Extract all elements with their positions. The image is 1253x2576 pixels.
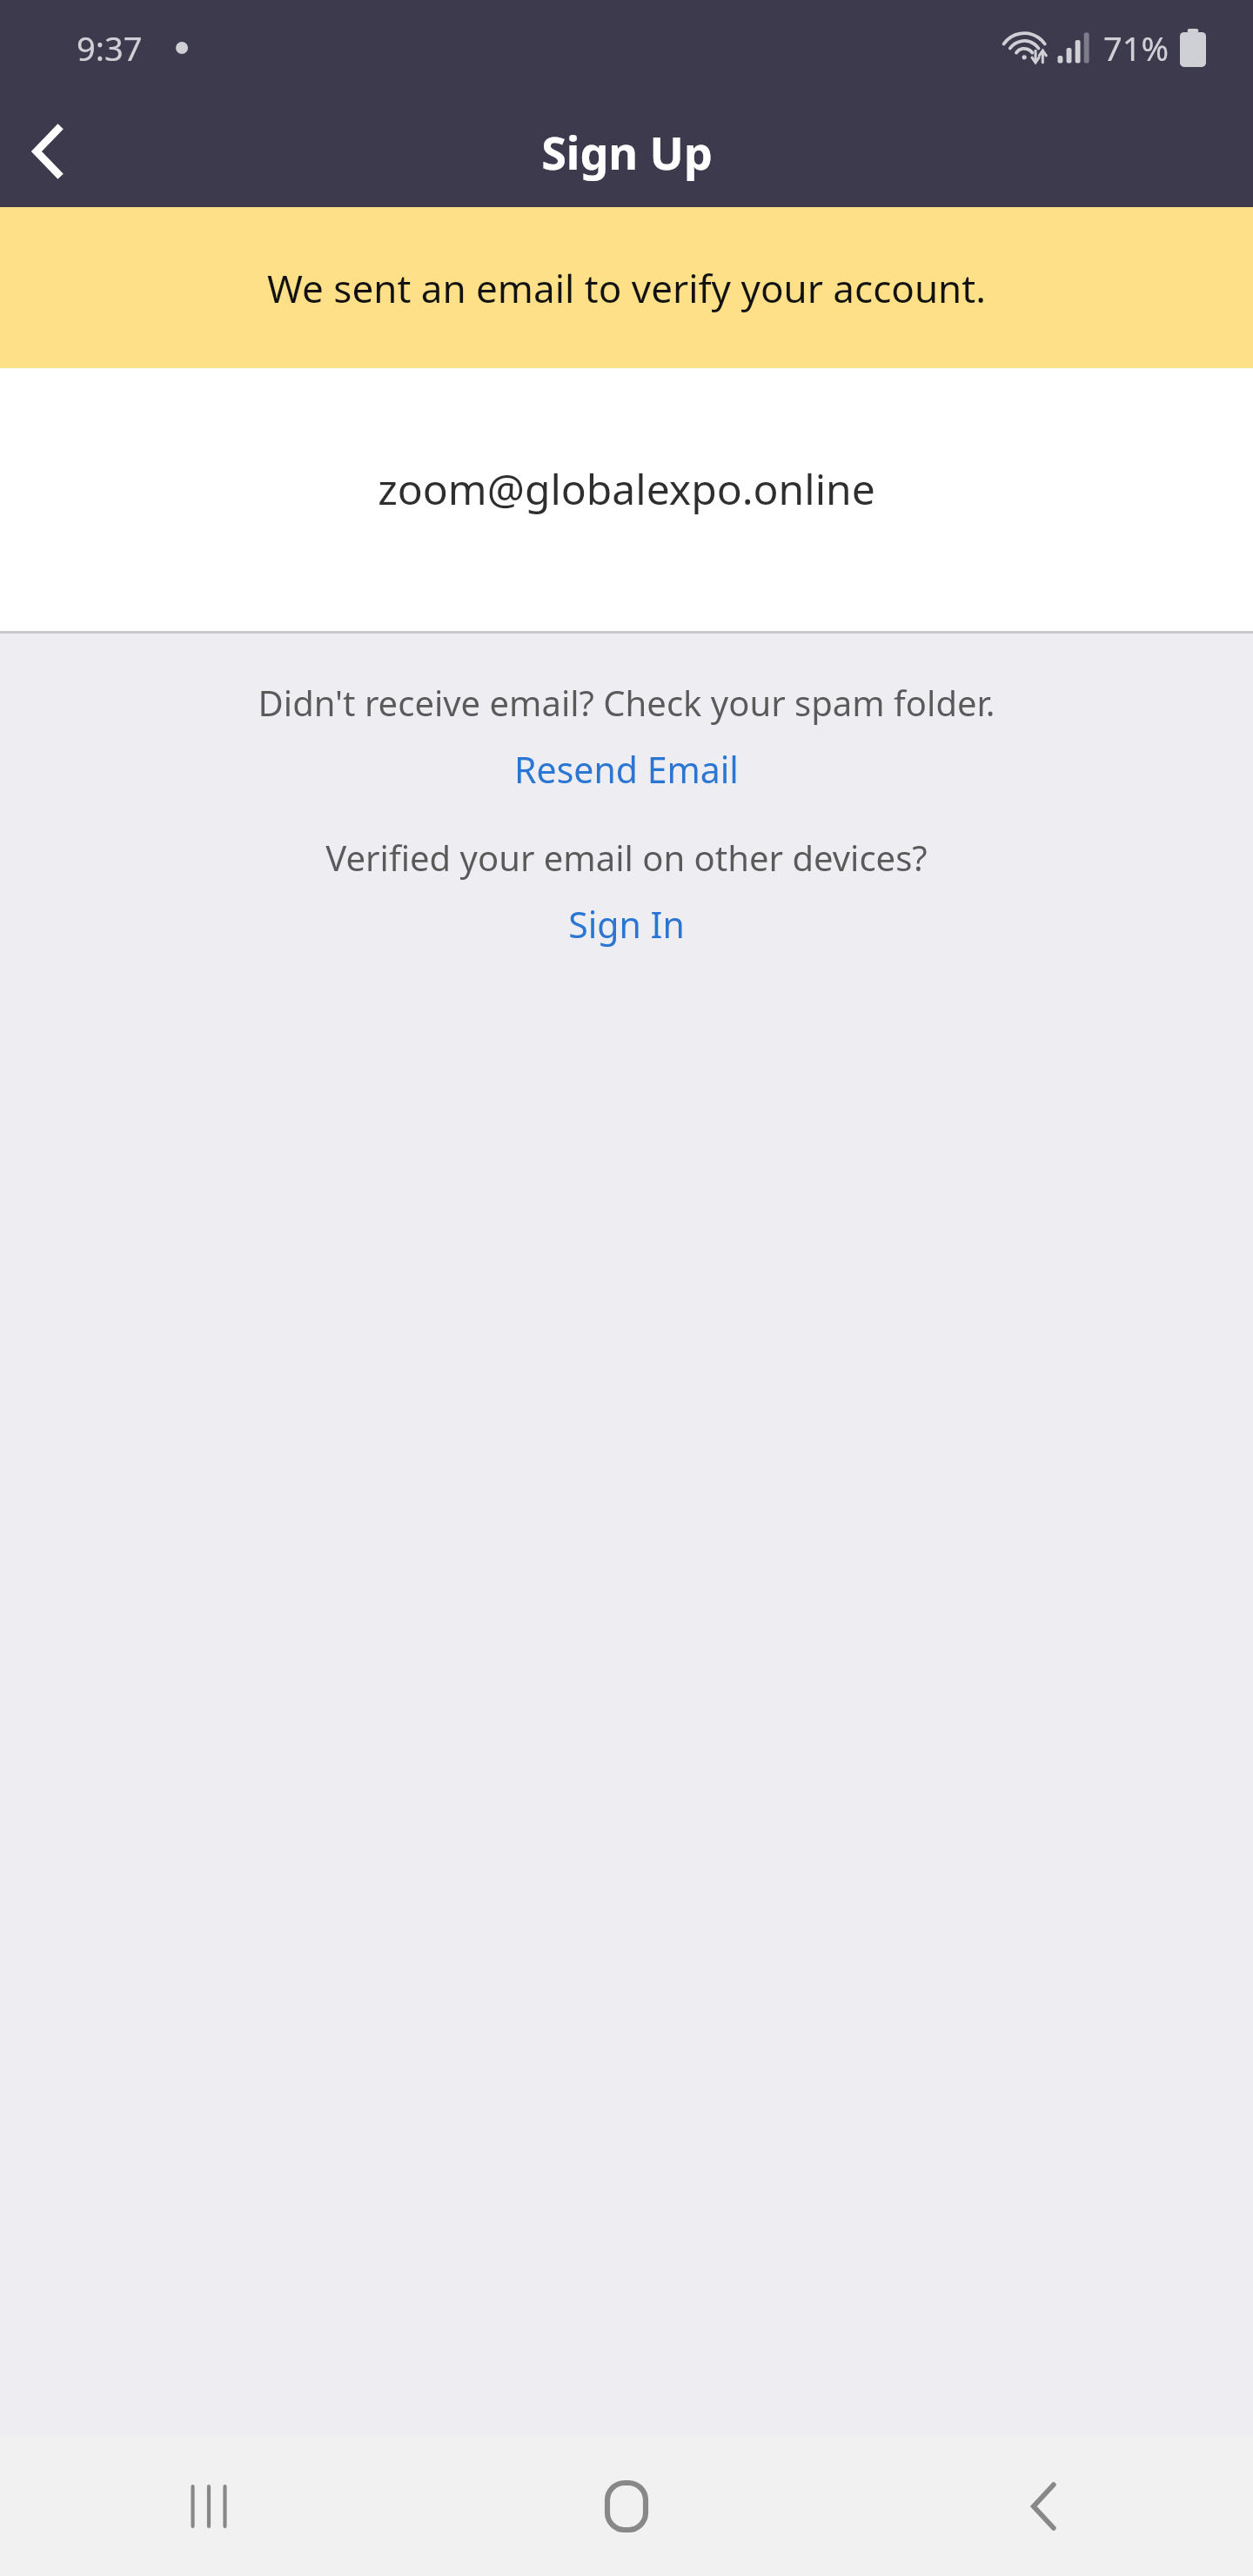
staticText: Sign Up [541, 121, 713, 183]
button[interactable]: Back [835, 2437, 1253, 2576]
staticText: We sent an email to verify your account. [0, 262, 1253, 314]
staticText: 71% [1103, 25, 1169, 70]
staticText: 9:37 [77, 25, 143, 70]
staticText: Resend Email [514, 745, 739, 794]
button[interactable]: Resend Email [0, 740, 1253, 799]
button[interactable]: Recents [0, 2437, 418, 2576]
staticText: zoom@globalexpo.online [0, 460, 1253, 517]
button[interactable]: Sign In [0, 895, 1253, 954]
button[interactable]: Home [418, 2437, 835, 2576]
button[interactable]: Back [0, 103, 97, 200]
staticText: Verified your email on other devices? [0, 834, 1253, 881]
staticText: Sign In [568, 900, 685, 949]
staticText: Didn't receive email? Check your spam fo… [0, 679, 1253, 726]
